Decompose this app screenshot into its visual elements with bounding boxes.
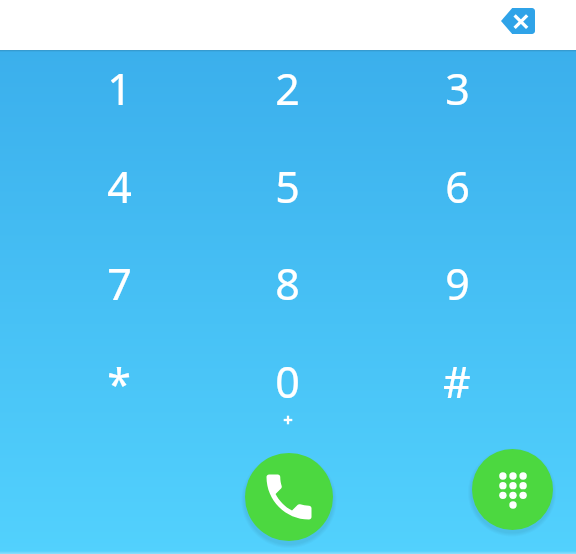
button[interactable]: 1 [63,46,175,130]
staticText: 2 [275,59,300,118]
button[interactable]: 9 [401,241,513,325]
staticText: 4 [107,157,132,216]
staticText: 8 [275,254,300,313]
button[interactable]: 0 [231,339,343,423]
button[interactable]: 8 [231,241,343,325]
button[interactable]: Show dialpad [472,449,553,530]
staticText: * [107,354,131,413]
button[interactable]: Backspace [497,4,539,38]
button[interactable]: 5 [231,144,343,228]
button[interactable]: 6 [401,144,513,228]
staticText: 3 [445,59,470,118]
staticText: 1 [107,59,132,118]
staticText: 7 [107,254,132,313]
staticText: # [443,352,471,411]
button[interactable]: * [63,341,175,425]
button[interactable]: 4 [63,144,175,228]
button[interactable]: 2 [231,46,343,130]
button[interactable]: 7 [63,241,175,325]
staticText: 9 [445,254,470,313]
button[interactable]: 3 [401,46,513,130]
staticText: 0 [275,352,300,411]
staticText: 5 [275,157,300,216]
staticText: 6 [445,157,470,216]
button[interactable]: Call [245,453,333,541]
button[interactable]: # [401,339,513,423]
